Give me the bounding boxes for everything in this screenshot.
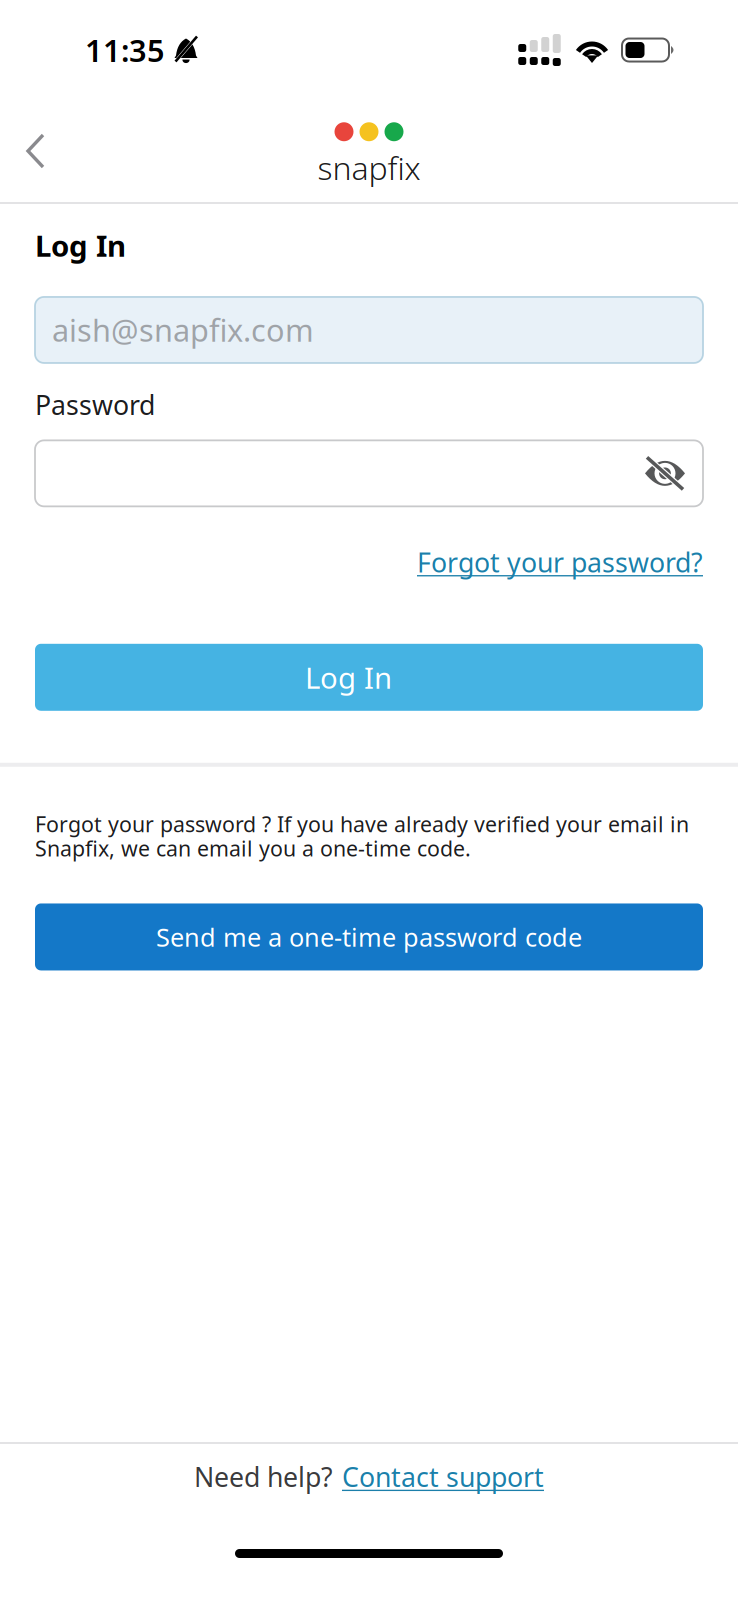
button[interactable]: Forgot your password? (417, 544, 703, 580)
staticText: aish@snapfix.com (52, 310, 314, 350)
staticText: snapfix (317, 146, 420, 189)
staticText: 11:35 (85, 30, 165, 70)
staticText: Log In (35, 226, 126, 265)
staticText: Log In (305, 658, 392, 697)
button[interactable]: Back (0, 115, 72, 187)
staticText: Need help? (194, 1459, 333, 1494)
staticText: Password (35, 387, 155, 422)
button[interactable]: Contact support (342, 1459, 544, 1494)
staticText: Send me a one-time password code (156, 920, 582, 954)
button[interactable]: Show password (627, 440, 703, 506)
staticText: Contact support (342, 1459, 544, 1494)
staticText: Forgot your password? (417, 544, 703, 580)
staticText: Forgot your password ? If you have alrea… (35, 810, 689, 862)
button[interactable]: Send me a one-time password code (35, 903, 703, 970)
button[interactable]: Log In (35, 644, 703, 711)
